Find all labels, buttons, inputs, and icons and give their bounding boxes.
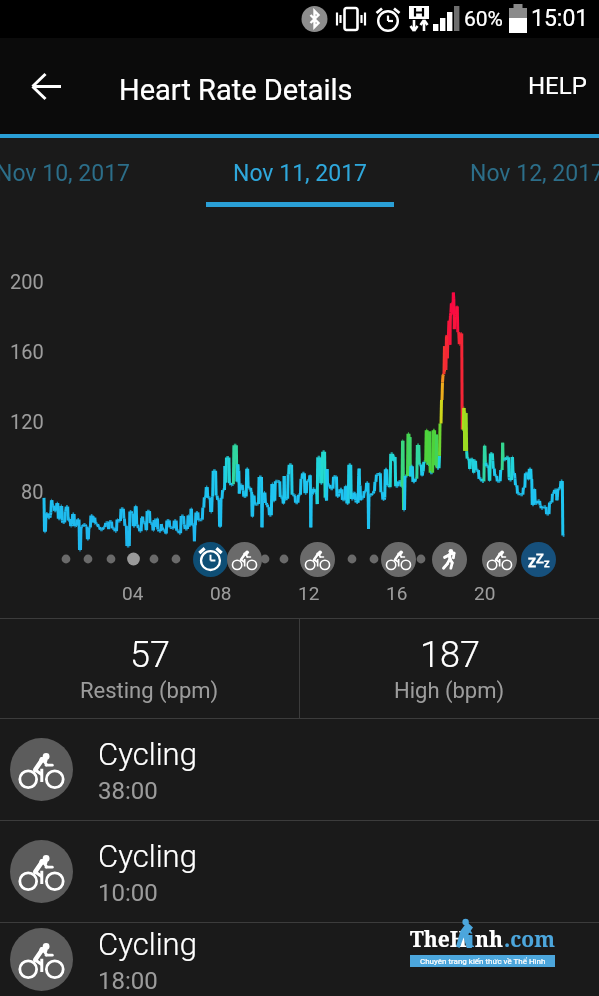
button[interactable]: HELP xyxy=(514,60,599,112)
staticText: Nov 12, 2017 xyxy=(470,160,599,187)
button[interactable]: Cycling xyxy=(0,719,599,820)
staticText: Chuyên trang kiến thức về Thể Hình xyxy=(420,957,546,966)
staticText: Resting (bpm) xyxy=(80,678,219,704)
button[interactable]: Alarm xyxy=(193,542,228,577)
staticText: 60% xyxy=(464,7,503,32)
staticText: 80 xyxy=(21,480,44,503)
button[interactable]: 57 xyxy=(0,619,299,718)
button[interactable]: Running xyxy=(432,542,467,577)
staticText: 04 xyxy=(122,582,144,604)
staticText: High (bpm) xyxy=(394,678,505,704)
staticText: .com xyxy=(504,925,555,954)
staticText: 187 xyxy=(420,634,480,676)
staticText: z xyxy=(528,552,536,571)
button[interactable]: Nov 12, 2017 xyxy=(418,138,599,224)
staticText: 200 xyxy=(10,270,44,293)
staticText: 160 xyxy=(10,340,44,363)
button[interactable]: Cycling xyxy=(0,923,599,996)
staticText: TheH xyxy=(410,925,467,954)
staticText: Cycling xyxy=(98,926,197,962)
button[interactable]: Cycling xyxy=(300,542,335,577)
staticText: 38:00 xyxy=(98,777,158,805)
staticText: 20 xyxy=(474,582,496,604)
staticText: Heart Rate Details xyxy=(119,73,353,107)
staticText: 18:00 xyxy=(98,967,158,995)
staticText: Nov 10, 2017 xyxy=(0,160,130,187)
staticText: HELP xyxy=(528,72,587,100)
staticText: 57 xyxy=(130,634,170,676)
staticText: 16 xyxy=(386,582,408,604)
staticText: Nov 11, 2017 xyxy=(233,160,367,187)
staticText: 120 xyxy=(10,410,44,433)
button[interactable]: Back xyxy=(21,60,73,112)
button[interactable]: Nov 11, 2017 xyxy=(181,138,418,224)
button[interactable]: 187 xyxy=(300,619,599,718)
button[interactable]: Nov 10, 2017 xyxy=(0,138,181,224)
button[interactable]: Sleep xyxy=(521,542,556,577)
button[interactable]: Cycling xyxy=(227,542,262,577)
staticText: 08 xyxy=(210,582,232,604)
button[interactable]: Cycling xyxy=(381,542,416,577)
staticText: z xyxy=(544,557,550,570)
staticText: Z xyxy=(536,551,544,566)
staticText: Cycling xyxy=(98,736,197,772)
staticText: 15:01 xyxy=(531,5,589,32)
staticText: ì xyxy=(467,925,475,954)
staticText: 10:00 xyxy=(98,879,158,907)
staticText: Cycling xyxy=(98,838,197,874)
button[interactable]: Cycling xyxy=(482,542,517,577)
staticText: nh xyxy=(475,925,504,954)
staticText: 12 xyxy=(298,582,320,604)
button[interactable]: Cycling xyxy=(0,821,599,922)
